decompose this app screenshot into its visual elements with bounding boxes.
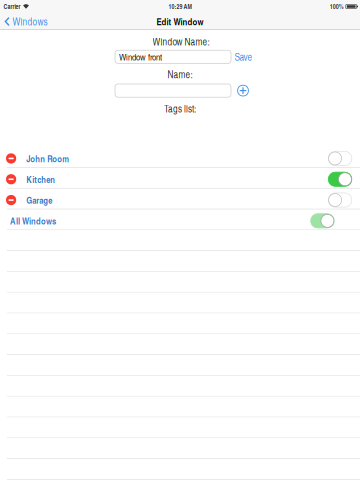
- staticText: Edit Window: [156, 15, 203, 28]
- button[interactable]: Delete Kitchen: [0, 174, 21, 184]
- staticText: 10:29 AM: [168, 2, 191, 11]
- staticText: John Room: [26, 152, 69, 165]
- button[interactable]: Windows: [0, 13, 53, 30]
- button[interactable]: Delete Garage: [0, 195, 21, 205]
- staticText: 100%: [330, 2, 344, 11]
- button[interactable]: Delete John Room: [0, 153, 21, 163]
- staticText: Carrier: [3, 2, 20, 11]
- button[interactable]: Garage: [21, 190, 52, 210]
- staticText: Name:: [167, 67, 192, 81]
- button[interactable]: All Windows: [0, 211, 56, 230]
- staticText: Window Name:: [152, 35, 209, 48]
- staticText: Windows: [12, 15, 47, 28]
- button[interactable]: Toggle John Room: [328, 151, 360, 165]
- staticText: All Windows: [10, 214, 56, 227]
- button[interactable]: Toggle Garage: [328, 193, 360, 207]
- button[interactable]: John Room: [21, 149, 69, 168]
- button[interactable]: Kitchen: [21, 170, 55, 189]
- staticText: Kitchen: [26, 173, 55, 186]
- button[interactable]: Toggle Kitchen: [328, 172, 360, 186]
- staticText: Window front: [119, 50, 162, 63]
- staticText: Save: [234, 50, 252, 64]
- button[interactable]: Add tag: [237, 85, 249, 97]
- button[interactable]: Toggle All Windows: [311, 214, 360, 228]
- staticText: Tags list:: [164, 102, 196, 115]
- button[interactable]: Save: [231, 47, 255, 67]
- staticText: Garage: [26, 193, 52, 207]
